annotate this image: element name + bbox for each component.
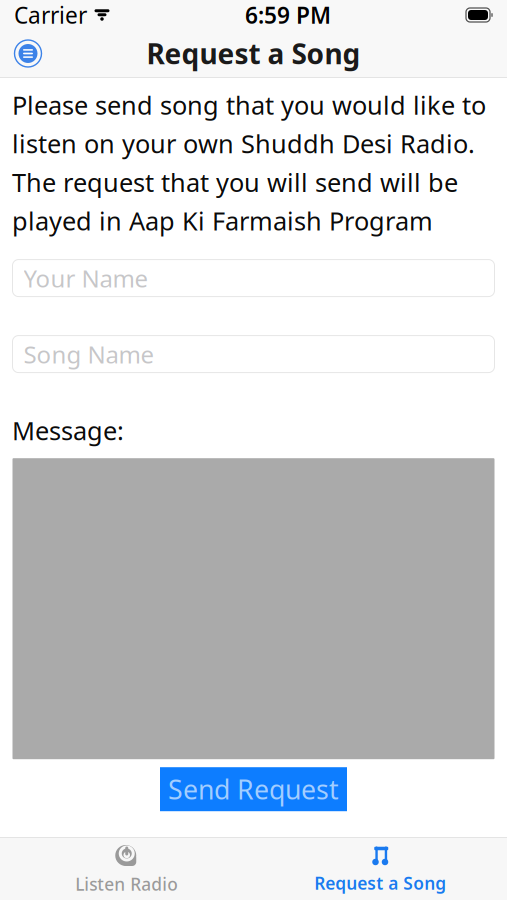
- staticText: Request a Song: [314, 871, 446, 894]
- button[interactable]: Send Request: [160, 767, 347, 811]
- staticText: Send Request: [168, 771, 339, 807]
- staticText: Carrier: [14, 0, 87, 30]
- staticText: Song Name: [23, 338, 154, 370]
- staticText: 6:59 PM: [245, 0, 331, 30]
- staticText: Please send song that you would like to …: [12, 88, 486, 238]
- staticText: Your Name: [23, 262, 148, 294]
- staticText: Request a Song: [146, 35, 360, 72]
- button[interactable]: Request a Song: [253, 838, 507, 900]
- staticText: Listen Radio: [75, 872, 178, 895]
- button[interactable]: Listen Radio: [0, 838, 253, 900]
- button[interactable]: Menu: [6, 31, 50, 75]
- staticText: Message:: [12, 414, 124, 447]
